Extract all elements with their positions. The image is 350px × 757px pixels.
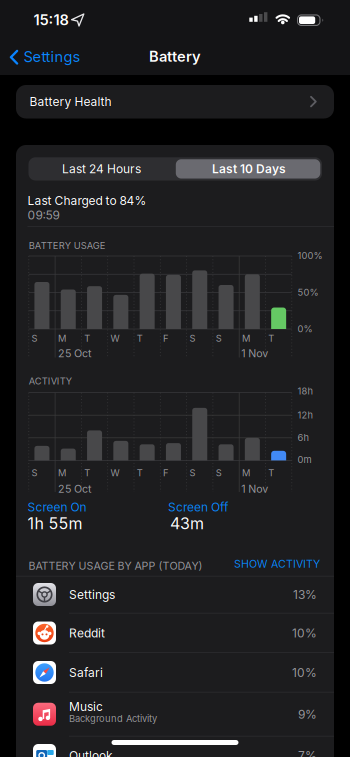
staticText: BATTERY USAGE [29, 240, 106, 251]
staticText: 15:18 [33, 11, 68, 28]
staticText: 09:59 [27, 208, 59, 222]
staticText: Last 24 Hours [62, 162, 141, 176]
staticText: 12h [297, 409, 313, 420]
staticText: Battery Health [29, 94, 111, 109]
staticText: Safari [69, 665, 103, 680]
button[interactable]: SHOW ACTIVITY [210, 558, 320, 570]
staticText: ACTIVITY [29, 376, 72, 387]
staticText: S [216, 333, 222, 344]
staticText: S [189, 467, 195, 478]
staticText: S [189, 333, 195, 344]
staticText: S [216, 467, 222, 478]
staticText: F [163, 333, 169, 344]
staticText: 50% [297, 287, 318, 298]
staticText: T [137, 333, 143, 344]
staticText: T [268, 333, 274, 344]
staticText: Screen Off [168, 500, 228, 514]
staticText: 6h [297, 432, 309, 443]
staticText: 7% [298, 748, 317, 757]
staticText: BATTERY USAGE BY APP (TODAY) [28, 559, 202, 572]
staticText: Reddit [69, 626, 105, 640]
staticText: SHOW ACTIVITY [234, 558, 320, 570]
button[interactable]: Outlook [16, 736, 334, 757]
staticText: 25 Oct [58, 347, 91, 360]
staticText: 9% [298, 707, 317, 721]
staticText: T [84, 467, 90, 478]
staticText: M [58, 333, 66, 344]
staticText: 0m [297, 454, 311, 465]
staticText: 13% [293, 587, 317, 602]
staticText: T [137, 467, 143, 478]
staticText: 25 Oct [58, 482, 91, 495]
button[interactable]: Battery Health [16, 85, 334, 118]
staticText: T [84, 333, 90, 344]
staticText: M [58, 467, 66, 478]
button[interactable]: Music [16, 692, 334, 736]
staticText: Last Charged to 84% [27, 193, 146, 208]
staticText: Music [69, 699, 103, 714]
staticText: Settings [23, 48, 80, 65]
staticText: 10% [292, 626, 317, 640]
button[interactable]: Settings [0, 48, 85, 65]
staticText: S [32, 467, 38, 478]
staticText: 1h 55m [27, 514, 82, 533]
button[interactable]: Reddit [16, 613, 334, 652]
staticText: M [242, 333, 250, 344]
staticText: Settings [69, 587, 115, 602]
staticText: 1 Nov [241, 482, 268, 495]
staticText: Last 10 Days [212, 162, 286, 176]
staticText: 43m [170, 514, 204, 533]
staticText: 18h [297, 385, 313, 396]
staticText: M [242, 467, 250, 478]
staticText: Outlook [69, 748, 113, 757]
staticText: W [110, 333, 119, 344]
button[interactable]: Safari [16, 653, 334, 692]
staticText: Background Activity [69, 713, 157, 724]
staticText: 0% [297, 323, 312, 334]
staticText: T [268, 467, 274, 478]
staticText: Battery [149, 48, 201, 65]
button[interactable]: Last 24 Hours [28, 157, 174, 180]
button[interactable]: Settings [16, 576, 334, 612]
staticText: S [32, 333, 38, 344]
staticText: Screen On [27, 500, 86, 514]
staticText: 100% [297, 250, 322, 261]
staticText: F [163, 467, 169, 478]
staticText: 1 Nov [241, 347, 268, 360]
staticText: W [110, 467, 119, 478]
button[interactable]: Last 10 Days [176, 157, 322, 180]
staticText: 10% [292, 665, 317, 680]
